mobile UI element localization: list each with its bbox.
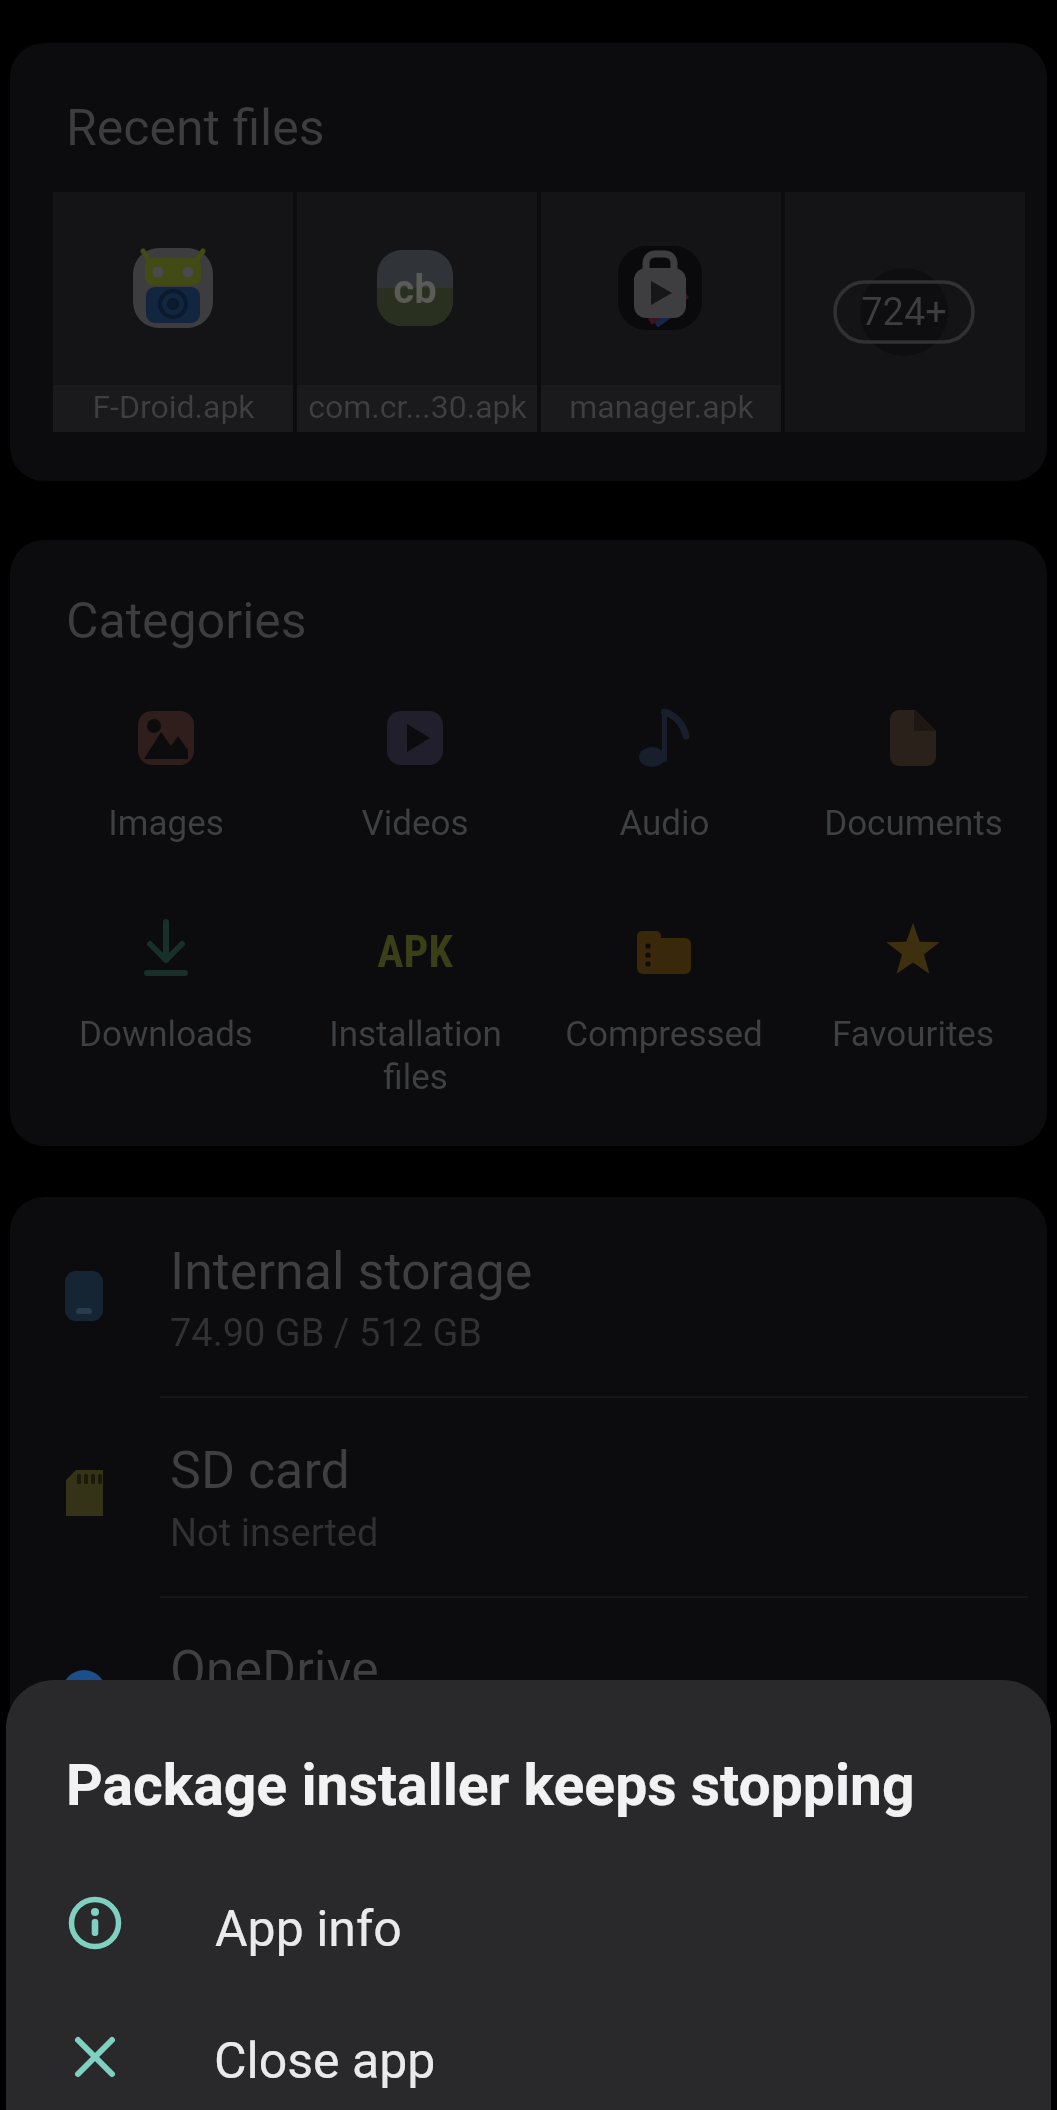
button[interactable]: [320, 900, 510, 1070]
staticText: Installation: [329, 1014, 502, 1055]
staticText: 724+: [861, 290, 947, 335]
button[interactable]: [10, 1600, 1047, 1680]
staticText: 74.90 GB / 512 GB: [170, 1311, 483, 1356]
button[interactable]: [818, 690, 1008, 860]
staticText: Downloads: [79, 1014, 253, 1055]
button[interactable]: [818, 900, 1008, 1070]
button[interactable]: [569, 690, 759, 860]
button[interactable]: [785, 192, 1025, 432]
staticText: Close app: [214, 2032, 436, 2091]
button[interactable]: [10, 1400, 1047, 1593]
button[interactable]: [30, 1858, 1027, 1988]
staticText: F-Droid.apk: [92, 388, 255, 426]
staticText: Videos: [361, 803, 469, 844]
staticText: Package installer keeps stopping: [66, 1752, 915, 1819]
button[interactable]: [71, 900, 261, 1070]
staticText: com.cr...30.apk: [308, 388, 527, 426]
button[interactable]: [10, 1210, 1047, 1390]
staticText: Categories: [66, 592, 307, 651]
staticText: APK: [377, 926, 453, 978]
staticText: cb: [393, 266, 437, 313]
staticText: SD card: [170, 1440, 350, 1501]
staticText: Audio: [619, 803, 710, 844]
button[interactable]: [320, 690, 510, 860]
staticText: Documents: [824, 803, 1003, 844]
staticText: Favourites: [832, 1014, 994, 1055]
staticText: Not inserted: [170, 1511, 379, 1556]
staticText: App info: [215, 1900, 402, 1959]
button[interactable]: [297, 192, 537, 432]
staticText: Internal storage: [170, 1241, 533, 1302]
button[interactable]: [30, 1992, 1027, 2110]
staticText: Recent files: [66, 99, 325, 158]
staticText: manager.apk: [569, 388, 754, 426]
button[interactable]: [53, 192, 293, 432]
staticText: Images: [108, 803, 224, 844]
button[interactable]: [541, 192, 781, 432]
button[interactable]: [71, 690, 261, 860]
staticText: Compressed: [565, 1014, 763, 1055]
button[interactable]: [569, 900, 759, 1070]
staticText: OneDrive: [170, 1639, 379, 1700]
staticText: files: [383, 1057, 448, 1098]
